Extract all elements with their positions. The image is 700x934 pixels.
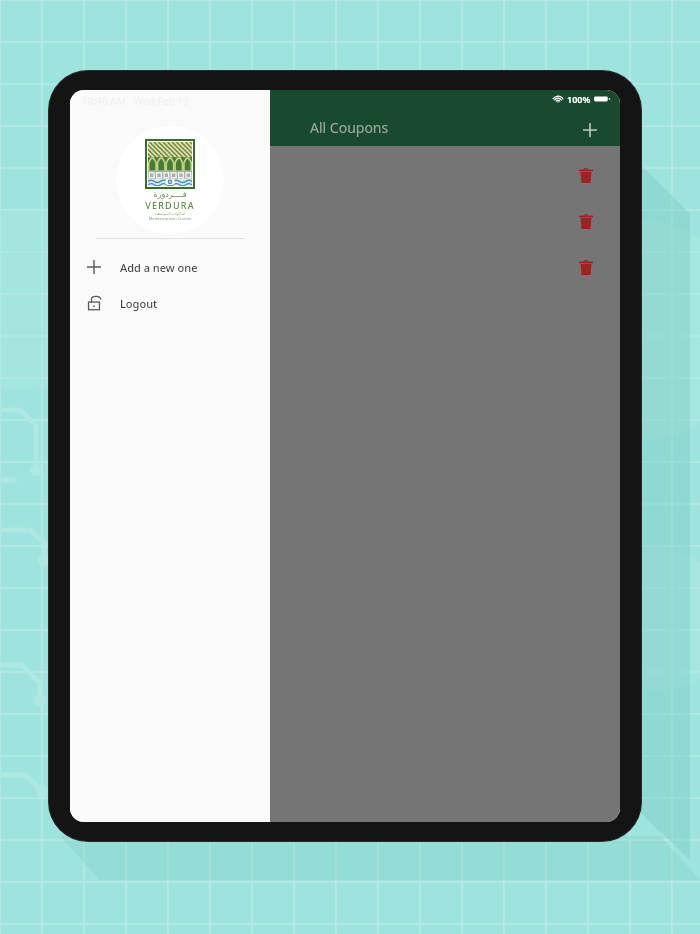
staticText: فــــردورة [141,190,199,199]
staticText: Mediterranean Cuisine [141,216,199,221]
staticText: 100% [567,93,591,105]
button[interactable]: Delete coupon [573,255,599,281]
staticText: VERDURA [141,199,199,211]
button[interactable]: Delete coupon [573,209,599,235]
button[interactable]: Delete coupon [573,163,599,189]
button[interactable]: Add coupon [578,118,602,142]
button[interactable]: Add a new one [70,249,270,285]
staticText: Add a new one [120,260,198,275]
staticText: All Coupons [310,118,389,137]
staticText: المأكولات المتوسطية [141,211,199,216]
staticText: Logout [120,296,158,311]
button[interactable]: Logout [70,285,270,321]
